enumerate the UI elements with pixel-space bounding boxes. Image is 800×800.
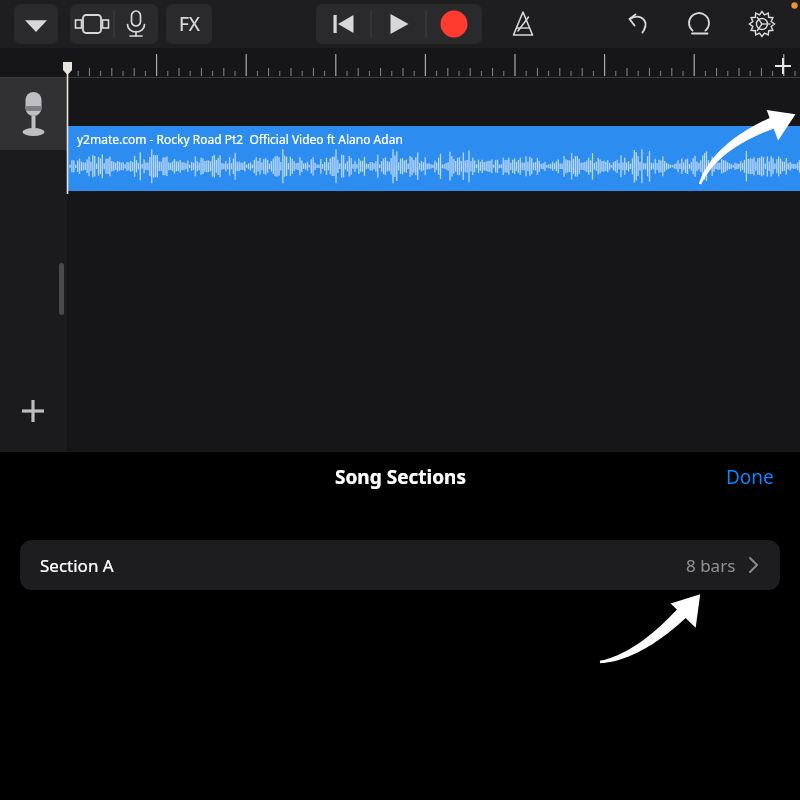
button[interactable]: Navigation menu [14,4,58,44]
button[interactable]: Effects [166,4,212,44]
button[interactable]: Section A [20,540,780,590]
button[interactable]: Undo [616,4,660,44]
button[interactable]: Metronome [500,4,546,44]
button[interactable]: Play [371,4,426,44]
button[interactable]: y2mate.com - Rocky Road Pt2 Official Vid… [68,126,800,191]
button[interactable]: Audio recorder track [0,78,67,150]
button[interactable]: Add region [766,48,800,82]
staticText: FX [179,11,200,37]
button[interactable]: Go to beginning [316,4,371,44]
staticText: Song Sections [335,464,466,490]
button[interactable]: Track view [70,4,114,44]
staticText: Done [726,464,774,490]
button[interactable]: Record [426,4,482,44]
staticText: 8 bars [686,554,736,577]
button[interactable]: Microphone [114,4,158,44]
button[interactable]: Done [712,460,788,494]
staticText: Section A [40,554,114,577]
button[interactable]: Add track [16,394,50,428]
button[interactable]: Settings [740,4,784,44]
button[interactable]: Loop [677,4,721,44]
staticText: y2mate.com - Rocky Road Pt2 Official Vid… [77,131,403,147]
